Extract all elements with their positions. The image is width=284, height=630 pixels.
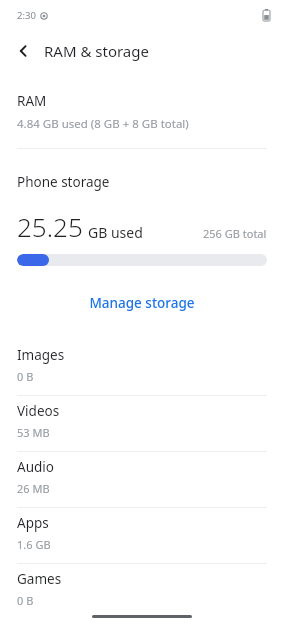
staticText: Games bbox=[17, 570, 62, 588]
staticText: RAM & storage bbox=[44, 41, 149, 61]
staticText: 26 MB bbox=[17, 481, 50, 496]
staticText: 0 B bbox=[17, 593, 34, 608]
staticText: 2:30 bbox=[17, 9, 36, 22]
staticText: Videos bbox=[17, 402, 60, 420]
staticText: 4.84 GB used (8 GB + 8 GB total) bbox=[17, 116, 189, 132]
button[interactable]: Back bbox=[8, 35, 40, 67]
staticText: GB used bbox=[88, 223, 143, 242]
staticText: 53 MB bbox=[17, 425, 50, 440]
button[interactable]: Games bbox=[0, 564, 284, 619]
staticText: Manage storage bbox=[89, 294, 195, 312]
button[interactable]: Images bbox=[0, 340, 284, 396]
staticText: Phone storage bbox=[17, 173, 110, 191]
staticText: Images bbox=[17, 346, 65, 364]
button[interactable]: Manage storage bbox=[0, 288, 284, 318]
staticText: Apps bbox=[17, 514, 49, 532]
staticText: RAM bbox=[17, 92, 47, 110]
staticText: 25.25 bbox=[17, 209, 83, 244]
staticText: 1.6 GB bbox=[17, 537, 51, 552]
staticText: 256 GB total bbox=[203, 226, 267, 241]
staticText: 0 B bbox=[17, 369, 34, 384]
staticText: Audio bbox=[17, 458, 54, 476]
button[interactable]: Audio bbox=[0, 452, 284, 508]
button[interactable]: Apps bbox=[0, 508, 284, 564]
button[interactable]: Videos bbox=[0, 396, 284, 452]
